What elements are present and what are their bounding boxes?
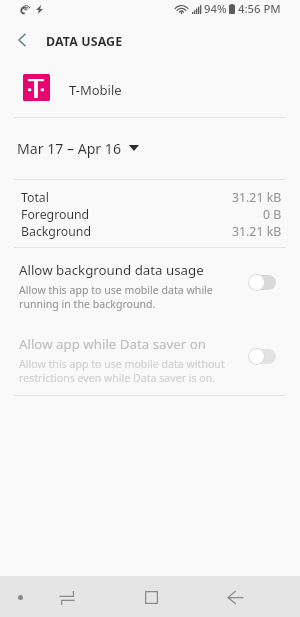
staticText: running in the background. <box>19 297 156 311</box>
button[interactable]: Toggle switch, off <box>248 347 276 365</box>
staticText: Foreground <box>21 206 90 223</box>
staticText: DATA USAGE <box>46 33 123 50</box>
button[interactable]: Recent apps <box>44 576 90 617</box>
staticText: 0 B <box>263 206 282 223</box>
button[interactable]: Back <box>4 22 40 58</box>
staticText: Allow this app to use mobile data withou… <box>19 357 225 371</box>
staticText: Total <box>21 189 49 206</box>
staticText: T-Mobile <box>69 81 122 99</box>
button[interactable]: Home <box>128 576 174 617</box>
staticText: Allow app while Data saver on <box>19 335 206 353</box>
button[interactable]: Mar 17 – Apr 16 <box>0 118 300 179</box>
button[interactable]: Back <box>212 576 258 617</box>
button[interactable]: Allow app while Data saver on <box>0 322 300 396</box>
button[interactable]: Show menu <box>2 576 38 617</box>
button[interactable]: Toggle switch, off <box>248 273 276 291</box>
staticText: 94% <box>204 1 227 16</box>
staticText: 31.21 kB <box>232 223 282 240</box>
staticText: Allow this app to use mobile data while <box>19 283 213 297</box>
staticText: restrictions even while Data saver is on… <box>19 371 216 385</box>
staticText: Mar 17 – Apr 16 <box>17 139 121 158</box>
button[interactable]: T-Mobile <box>0 62 300 117</box>
staticText: 4:56 PM <box>238 1 281 16</box>
button[interactable]: Allow background data usage <box>0 248 300 322</box>
staticText: Background <box>21 223 91 240</box>
staticText: Allow background data usage <box>19 261 204 279</box>
staticText: 31.21 kB <box>232 189 282 206</box>
